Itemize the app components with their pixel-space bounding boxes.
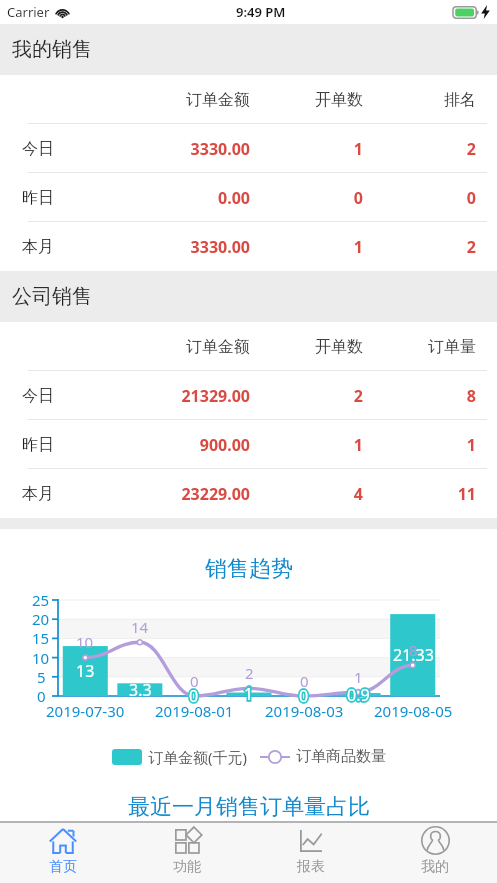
staticText: 2019-08-05 [374,701,453,721]
staticText: 本月 [22,237,138,257]
button[interactable]: 今日 [0,371,497,420]
staticText: 11 [363,483,476,505]
button[interactable]: 昨日 [0,173,497,222]
staticText: 订单商品数量 [296,747,386,766]
staticText: 900.00 [138,434,250,456]
staticText: 销售趋势 [205,555,293,583]
staticText: 排名 [363,90,476,110]
staticText: 21329.00 [138,385,250,407]
other: 功能 [175,828,200,853]
staticText: 5 [37,667,46,687]
staticText: 3.3 [129,679,152,701]
staticText: 我的 [421,858,449,876]
staticText: 报表 [297,858,325,876]
button[interactable]: 最近一月销售订单量占比 [128,793,370,821]
staticText: 0 [190,671,199,691]
staticText: 0 [363,187,476,209]
staticText: 公司销售 [12,284,92,309]
button[interactable]: 首页 [0,823,125,883]
button[interactable]: 我的 [373,823,497,883]
button[interactable]: 今日 [0,124,497,173]
other: 首页 [49,828,77,854]
staticText: 首页 [49,858,77,876]
staticText: 0 [189,685,199,707]
staticText: 订单量 [363,337,476,357]
button[interactable]: 本月 [0,222,497,271]
staticText: 4 [250,483,363,505]
staticText: 10 [76,632,94,652]
staticText: 开单数 [250,337,363,357]
staticText: 25 [32,590,50,610]
button[interactable]: 昨日 [0,420,497,469]
staticText: 8 [363,385,476,407]
staticText: 20 [32,609,50,629]
other: 我的 [421,826,450,855]
staticText: 1 [354,667,363,687]
staticText: 0.00 [138,187,250,209]
staticText: 0 [299,685,309,707]
staticText: 14 [131,617,149,637]
staticText: 本月 [22,484,138,504]
staticText: Carrier [7,3,50,21]
staticText: 2 [245,663,254,683]
staticText: 0 [300,671,309,691]
button[interactable]: 报表 [249,823,373,883]
button[interactable]: 功能 [125,823,249,883]
staticText: 昨日 [22,435,138,455]
staticText: 1 [244,683,254,705]
staticText: 0 [37,686,46,706]
staticText: 2019-08-01 [155,701,234,721]
staticText: 0 [189,685,199,707]
staticText: 功能 [173,858,201,876]
button[interactable]: 本月 [0,469,497,518]
staticText: 23229.00 [138,483,250,505]
staticText: 订单金额 [138,90,250,110]
staticText: 1 [250,138,363,160]
staticText: 订单金额 [138,337,250,357]
staticText: 9:49 PM [236,3,286,21]
staticText: 2 [363,236,476,258]
staticText: 1 [250,236,363,258]
staticText: 10 [32,648,50,668]
staticText: 0 [299,685,309,707]
staticText: 0.9 [347,684,370,706]
staticText: 2019-08-03 [265,701,344,721]
staticText: 15 [32,628,50,648]
staticText: 0.9 [347,684,370,706]
staticText: 2 [363,138,476,160]
staticText: 1 [250,434,363,456]
staticText: 昨日 [22,188,138,208]
staticText: 开单数 [250,90,363,110]
staticText: 1 [244,683,254,705]
staticText: 0 [250,187,363,209]
staticText: 2019-07-30 [46,701,125,721]
staticText: 1 [363,434,476,456]
staticText: 2 [250,385,363,407]
staticText: 13 [76,660,95,682]
staticText: 3330.00 [138,138,250,160]
staticText: 今日 [22,139,138,159]
staticText: 订单金额(千元) [148,747,248,767]
staticText: 8 [409,640,418,660]
staticText: 我的销售 [12,37,92,62]
staticText: 3330.00 [138,236,250,258]
other: 报表 [300,830,322,852]
staticText: 今日 [22,386,138,406]
staticText: 21.33 [393,644,434,666]
